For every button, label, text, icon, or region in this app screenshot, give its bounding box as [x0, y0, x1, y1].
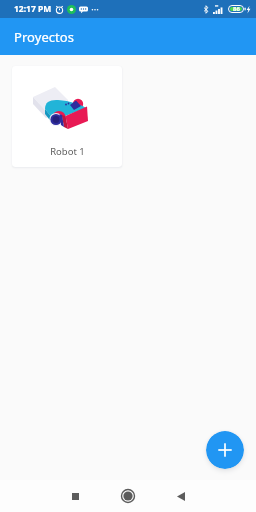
staticText: 12:17 PM [14, 3, 52, 15]
button[interactable]: Robot 1 [12, 66, 122, 167]
staticText: Robot 1 [50, 145, 85, 158]
staticText: Proyectos [14, 28, 75, 46]
staticText: 86 [233, 5, 240, 13]
button[interactable]: Home [116, 484, 140, 508]
button[interactable]: Recents [63, 484, 87, 508]
button[interactable]: Back [169, 484, 193, 508]
button[interactable]: Add project [206, 431, 244, 469]
